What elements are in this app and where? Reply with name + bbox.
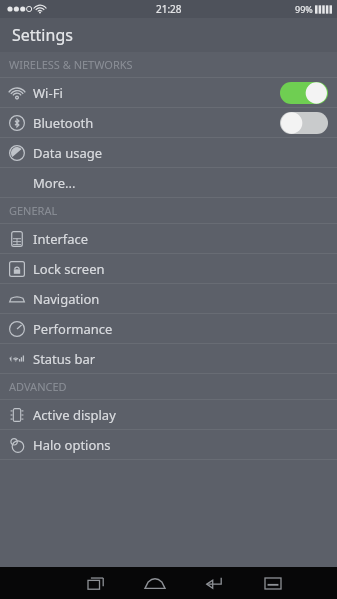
staticText: Lock screen: [33, 260, 105, 278]
button[interactable]: Recents: [66, 567, 125, 599]
staticText: More...: [33, 174, 76, 192]
button[interactable]: Menu: [243, 567, 302, 599]
staticText: ADVANCED: [9, 379, 67, 394]
button[interactable]: Back: [184, 567, 243, 599]
staticText: Wi-Fi: [33, 84, 63, 102]
button[interactable]: Toggle on: [280, 82, 328, 104]
button[interactable]: Wi-Fi: [0, 78, 337, 107]
button[interactable]: Lock screen: [0, 254, 337, 283]
button[interactable]: Active display: [0, 400, 337, 429]
staticText: Performance: [33, 320, 113, 338]
staticText: Navigation: [33, 290, 100, 308]
button[interactable]: Home: [125, 567, 184, 599]
staticText: Interface: [33, 230, 89, 248]
staticText: Active display: [33, 406, 116, 424]
button[interactable]: More...: [0, 168, 337, 197]
button[interactable]: Status bar: [0, 344, 337, 373]
staticText: WIRELESS & NETWORKS: [9, 57, 133, 72]
button[interactable]: Bluetooth: [0, 108, 337, 137]
button[interactable]: Navigation: [0, 284, 337, 313]
staticText: Settings: [12, 24, 73, 46]
staticText: Status bar: [33, 350, 96, 368]
button[interactable]: Performance: [0, 314, 337, 343]
staticText: 21:28: [156, 2, 182, 16]
button[interactable]: Data usage: [0, 138, 337, 167]
button[interactable]: Halo options: [0, 430, 337, 459]
staticText: GENERAL: [9, 203, 58, 218]
staticText: 99%: [295, 3, 313, 15]
button[interactable]: Interface: [0, 224, 337, 253]
button[interactable]: Toggle off: [280, 112, 328, 134]
staticText: Halo options: [33, 436, 111, 454]
staticText: Data usage: [33, 144, 103, 162]
staticText: Bluetooth: [33, 114, 94, 132]
